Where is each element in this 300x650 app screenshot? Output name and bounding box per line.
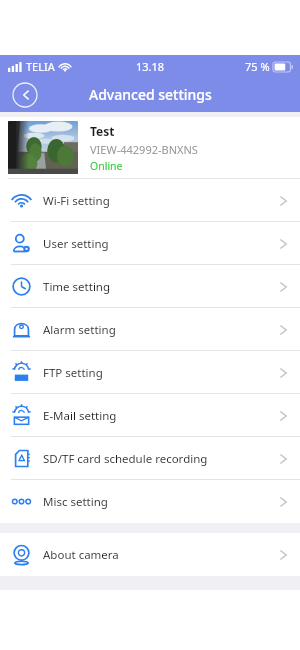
- staticText: Online: [90, 159, 123, 173]
- staticText: Time setting: [43, 279, 111, 295]
- staticText: 13.18: [136, 59, 165, 74]
- button[interactable]: E-Mail setting: [0, 394, 300, 437]
- button[interactable]: Alarm setting: [0, 308, 300, 351]
- staticText: Test: [90, 123, 115, 139]
- staticText: SD/TF card schedule recording: [43, 451, 208, 467]
- staticText: Advanced settings: [89, 85, 212, 104]
- button[interactable]: Misc setting: [0, 480, 300, 523]
- staticText: VIEW-442992-BNXNS: [90, 142, 198, 157]
- staticText: Wi-Fi setting: [43, 193, 110, 209]
- staticText: FTP setting: [43, 365, 103, 381]
- button[interactable]: FTP: [0, 351, 300, 394]
- staticText: E-Mail setting: [43, 408, 117, 424]
- button[interactable]: Wi-Fi setting: [0, 179, 300, 222]
- staticText: TELIA: [26, 59, 55, 74]
- staticText: About camera: [43, 547, 119, 563]
- button[interactable]: Back: [10, 80, 40, 110]
- button[interactable]: Time setting: [0, 265, 300, 308]
- button[interactable]: SD/TF card schedule recording: [0, 437, 300, 480]
- staticText: 75 %: [245, 59, 270, 74]
- button[interactable]: User setting: [0, 222, 300, 265]
- staticText: User setting: [43, 236, 109, 252]
- staticText: Alarm setting: [43, 322, 116, 338]
- button[interactable]: About camera: [0, 533, 300, 576]
- button[interactable]: Test: [0, 117, 300, 179]
- staticText: Misc setting: [43, 494, 108, 510]
